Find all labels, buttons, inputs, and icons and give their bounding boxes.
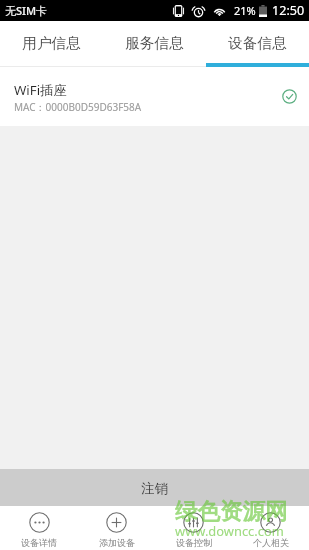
other: 设备控制 — [183, 512, 204, 533]
staticText: 设备信息 — [228, 34, 287, 52]
button[interactable]: 设备详情 — [0, 506, 78, 550]
other: 设备详情 — [29, 512, 50, 533]
button[interactable]: 注销 — [0, 469, 309, 506]
staticText: 设备控制 — [176, 537, 212, 548]
button[interactable]: 服务信息 — [103, 21, 206, 67]
other: 添加设备 — [106, 512, 127, 533]
staticText: 设备详情 — [21, 537, 57, 548]
staticText: 用户信息 — [22, 34, 81, 52]
staticText: 绿色资源网 — [175, 497, 288, 525]
staticText: 添加设备 — [99, 537, 135, 548]
staticText: www.downcc.com — [175, 522, 284, 540]
button[interactable]: 用户信息 — [0, 21, 103, 67]
other: 个人相关 — [260, 512, 281, 533]
staticText: WiFi插座 — [14, 81, 67, 99]
staticText: 个人相关 — [253, 537, 289, 548]
other: 已连接 — [282, 89, 297, 104]
button[interactable]: WiFi插座 — [0, 67, 309, 126]
button[interactable]: 添加设备 — [78, 506, 155, 550]
staticText: 无SIM卡 — [5, 3, 48, 18]
staticText: MAC：0000B0D59D63F58A — [14, 100, 142, 114]
staticText: 注销 — [141, 480, 168, 497]
staticText: 12:50 — [272, 2, 305, 19]
staticText: 21% — [234, 3, 256, 18]
button[interactable]: 个人相关 — [232, 506, 309, 550]
button[interactable]: 设备信息 — [206, 21, 309, 67]
staticText: 服务信息 — [125, 34, 184, 52]
button[interactable]: 设备控制 — [155, 506, 232, 550]
